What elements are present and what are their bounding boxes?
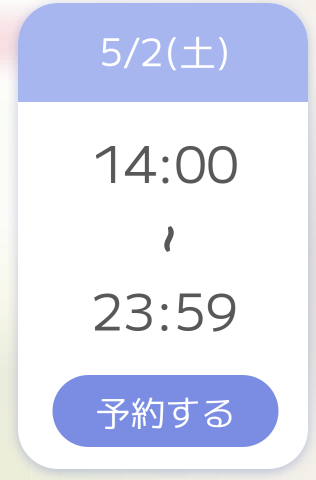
- button[interactable]: 予約する: [52, 375, 278, 447]
- staticText: 14:00: [92, 124, 238, 198]
- staticText: 予約する: [95, 386, 235, 436]
- staticText: 23:59: [91, 272, 237, 345]
- staticText: 5/2(土): [99, 23, 231, 77]
